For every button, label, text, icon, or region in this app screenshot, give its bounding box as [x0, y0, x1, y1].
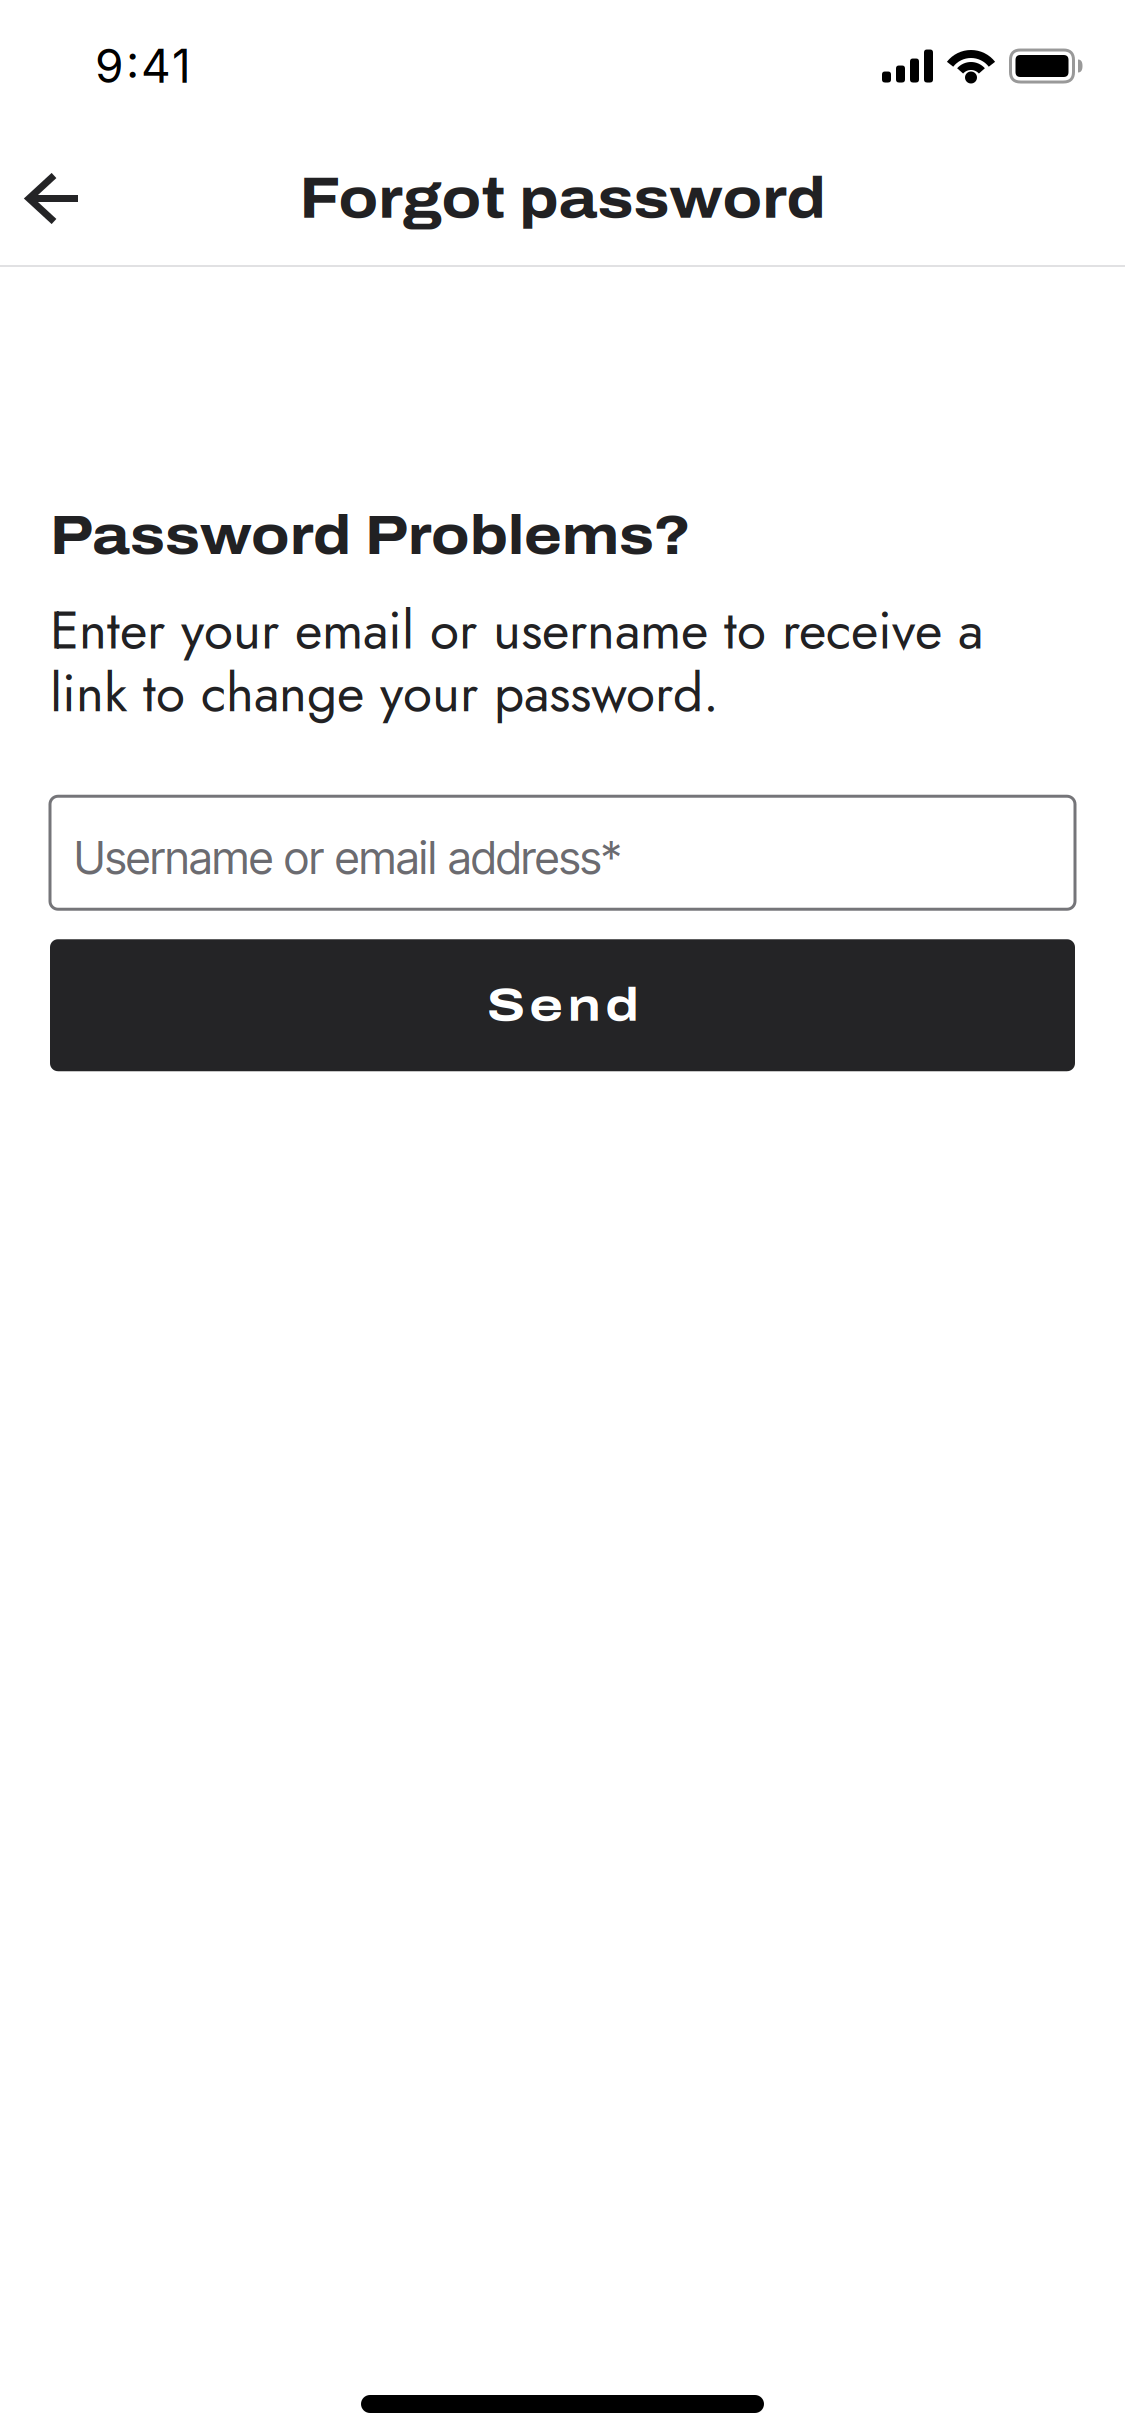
staticText: Send — [487, 980, 638, 1031]
button[interactable]: Back — [0, 159, 101, 237]
button[interactable]: Username or email address — [50, 796, 1075, 909]
staticText: Password Problems? — [50, 505, 691, 566]
button[interactable]: Send — [50, 939, 1075, 1071]
staticText: Enter your email or username to receive … — [50, 599, 983, 724]
staticText: Username or email address* — [74, 830, 621, 885]
staticText: Forgot password — [299, 167, 825, 230]
staticText: 9:41 — [95, 38, 191, 94]
